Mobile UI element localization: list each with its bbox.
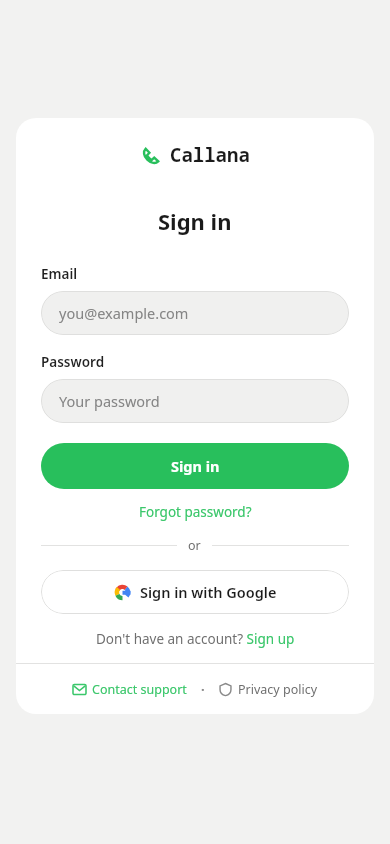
other: Contact support bbox=[73, 683, 86, 696]
staticText: · bbox=[201, 680, 205, 698]
button[interactable]: Your password bbox=[41, 379, 349, 423]
button[interactable]: Privacy policy bbox=[215, 675, 322, 704]
button[interactable]: Forgot password? bbox=[41, 503, 349, 521]
staticText: Sign in with Google bbox=[140, 582, 277, 602]
button[interactable]: Contact support bbox=[69, 675, 191, 704]
staticText: Password bbox=[41, 353, 105, 371]
button[interactable]: Sign in with Google bbox=[41, 570, 349, 614]
staticText: Forgot password? bbox=[139, 503, 252, 521]
staticText: Sign in bbox=[171, 456, 220, 476]
staticText: Your password bbox=[59, 391, 160, 411]
button[interactable]: Sign in bbox=[41, 443, 349, 489]
staticText: Don't have an account? Sign up bbox=[96, 630, 295, 648]
staticText: Sign in bbox=[158, 206, 232, 236]
button[interactable]: Don't have an account? Sign up bbox=[41, 630, 349, 648]
other: Privacy policy bbox=[219, 683, 232, 696]
staticText: Callana bbox=[170, 142, 250, 168]
staticText: Contact support bbox=[92, 681, 187, 698]
staticText: you@example.com bbox=[59, 303, 189, 323]
button[interactable]: you@example.com bbox=[41, 291, 349, 335]
staticText: Email bbox=[41, 265, 78, 283]
staticText: Privacy policy bbox=[238, 681, 318, 698]
staticText: or bbox=[188, 537, 201, 554]
